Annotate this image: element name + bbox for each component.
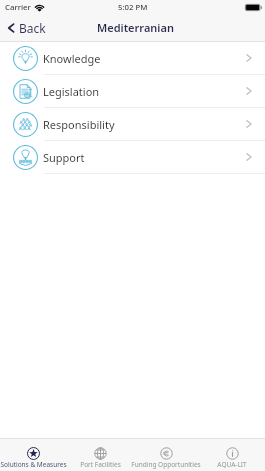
staticText: Funding Opportunities xyxy=(131,460,201,469)
button[interactable]: Back xyxy=(0,16,54,40)
button[interactable]: Port Facilities xyxy=(67,439,133,469)
button[interactable]: Solutions & Measures xyxy=(0,439,67,469)
staticText: Carrier xyxy=(5,2,31,13)
staticText: 5:02 PM xyxy=(118,2,148,13)
staticText: Legislation xyxy=(43,84,100,99)
staticText: AQUA-LIT xyxy=(217,460,247,469)
button[interactable]: AQUA-LIT xyxy=(199,439,265,469)
button[interactable]: Funding Opportunities xyxy=(133,439,199,469)
staticText: Solutions & Measures xyxy=(0,460,67,469)
staticText: Knowledge xyxy=(43,51,101,66)
button[interactable]: Knowledge xyxy=(0,42,265,75)
staticText: Back xyxy=(19,20,46,36)
button[interactable]: Responsibility xyxy=(0,108,265,141)
button[interactable]: Support xyxy=(0,141,265,174)
staticText: Mediterranian xyxy=(97,20,174,35)
button[interactable]: Legislation xyxy=(0,75,265,108)
staticText: Responsibility xyxy=(43,117,115,132)
staticText: Support xyxy=(43,150,85,165)
staticText: Port Facilities xyxy=(80,460,121,469)
